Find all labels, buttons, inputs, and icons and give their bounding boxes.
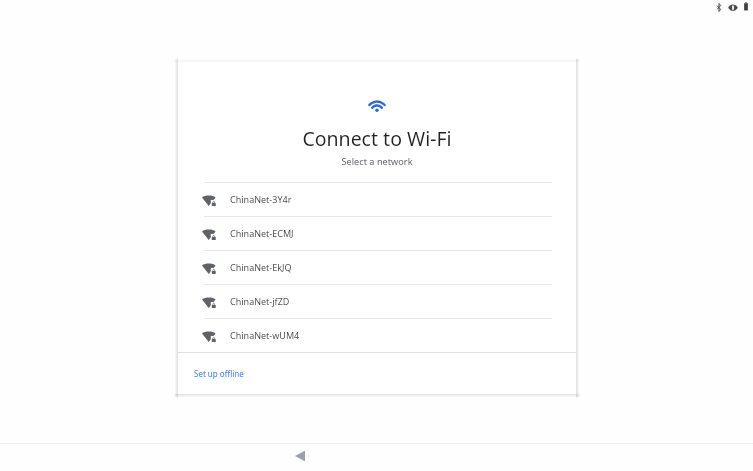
button[interactable]: ChinaNet-3Y4r	[178, 183, 576, 216]
button[interactable]: ChinaNet-EkJQ	[178, 251, 576, 284]
staticText: Connect to Wi-Fi	[178, 125, 576, 152]
staticText: ChinaNet-3Y4r	[230, 193, 292, 205]
staticText: ChinaNet-ECMJ	[230, 227, 294, 239]
staticText: Select a network	[178, 155, 576, 168]
staticText: ChinaNet-jfZD	[230, 295, 290, 307]
staticText: ChinaNet-EkJQ	[230, 261, 292, 273]
staticText: ChinaNet-wUM4	[230, 329, 300, 341]
staticText: Set up offline	[194, 368, 244, 379]
button[interactable]: Set up offline	[178, 353, 576, 394]
button[interactable]: ChinaNet-wUM4	[178, 319, 576, 352]
button[interactable]: ChinaNet-jfZD	[178, 285, 576, 318]
button[interactable]: ChinaNet-ECMJ	[178, 217, 576, 250]
button[interactable]: Back	[285, 444, 315, 468]
